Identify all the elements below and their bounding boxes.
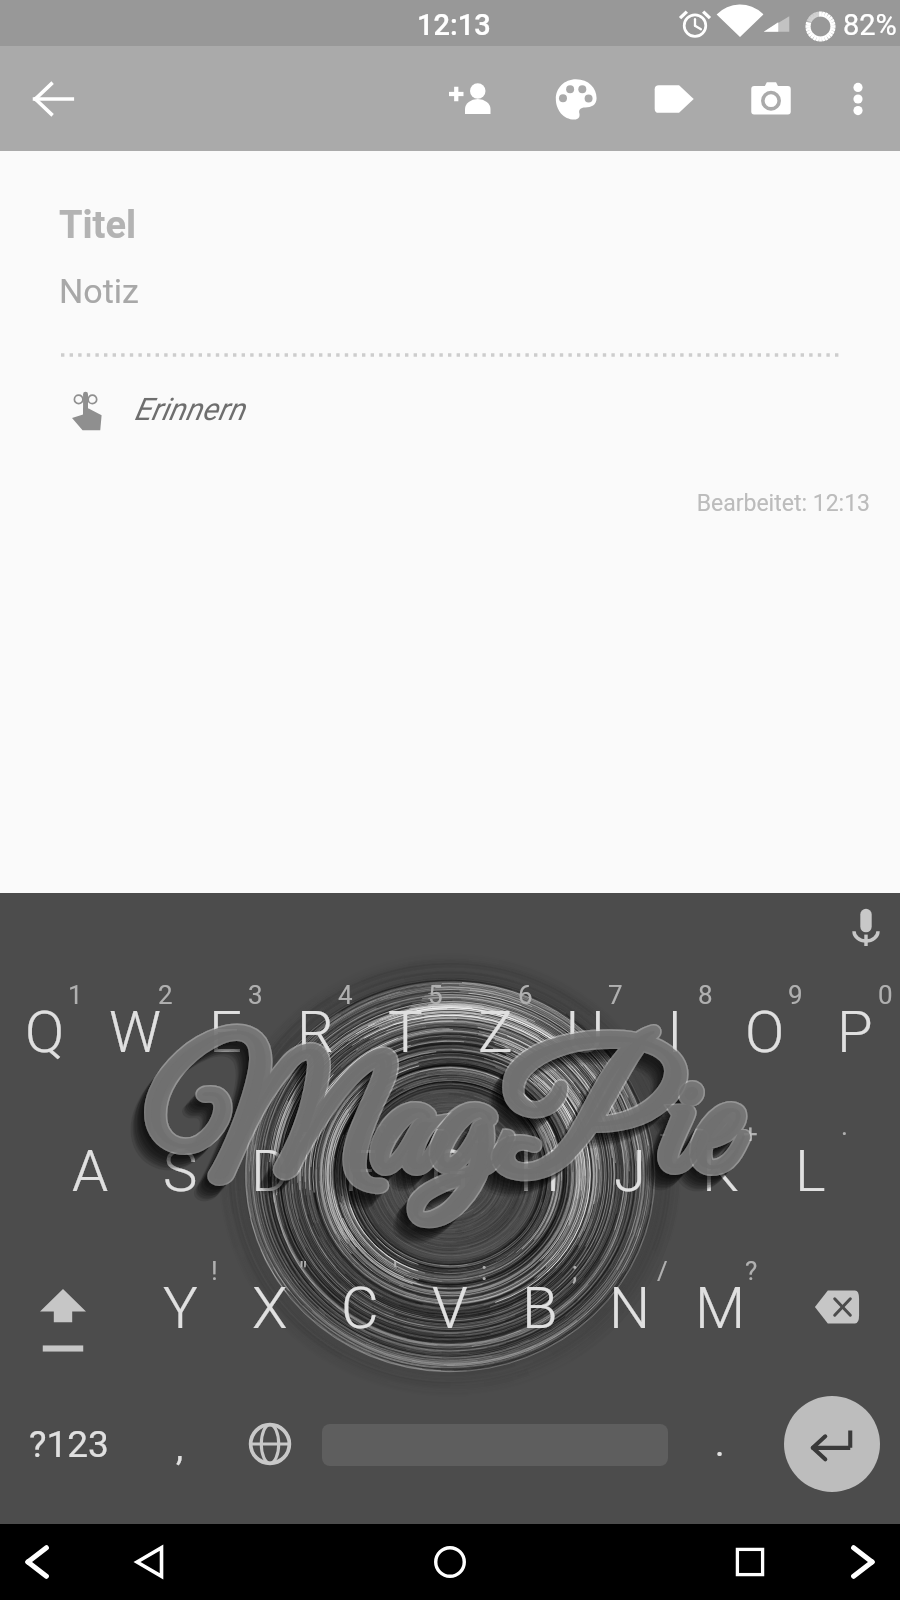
staticText: / (657, 1256, 668, 1286)
button[interactable]: Sprache wechseln (240, 1414, 300, 1474)
button[interactable]: F (315, 1110, 405, 1230)
staticText: ? (745, 1256, 758, 1286)
staticText: MagPie (148, 1026, 734, 1235)
button[interactable]: Spracheingabe (836, 893, 896, 961)
button[interactable]: Zurück (9, 46, 97, 151)
staticText: 5 (428, 980, 443, 1010)
button[interactable]: I (630, 971, 720, 1091)
staticText: N (609, 1274, 651, 1342)
staticText: E (209, 998, 242, 1066)
staticText: MagPie (145, 1029, 731, 1238)
staticText: 9 (788, 980, 803, 1010)
staticText: . (715, 1423, 725, 1465)
button[interactable]: U (540, 971, 630, 1091)
staticText: : (481, 1256, 488, 1286)
staticText: R (297, 998, 334, 1066)
button[interactable]: B (495, 1247, 585, 1367)
staticText: U (566, 998, 605, 1066)
button[interactable]: ?123 (14, 1408, 124, 1480)
staticText: MagPie (140, 1035, 726, 1244)
staticText: D (251, 1137, 290, 1205)
staticText: MagPie (148, 1026, 734, 1235)
button[interactable]: M (675, 1247, 765, 1367)
staticText: MagPie (137, 1038, 723, 1247)
button[interactable]: H (495, 1110, 585, 1230)
staticText: Y (163, 1274, 198, 1342)
staticText: I (667, 998, 683, 1066)
button[interactable]: V (405, 1247, 495, 1367)
button[interactable]: R (270, 971, 360, 1091)
button[interactable]: Mehr Optionen (814, 46, 900, 151)
staticText: 12:13 (417, 8, 491, 42)
button[interactable]: Zurück (6, 1530, 70, 1594)
button[interactable]: A (45, 1110, 135, 1230)
staticText: K (702, 1137, 739, 1205)
staticText: % (378, 1119, 398, 1149)
button[interactable]: Erinnern (71, 390, 245, 432)
staticText: V (432, 1274, 468, 1342)
staticText: Notiz (59, 271, 139, 311)
staticText: 0 (878, 980, 893, 1010)
button[interactable]: E (180, 971, 270, 1091)
staticText: H (519, 1137, 561, 1205)
button[interactable]: C (315, 1247, 405, 1367)
staticText: P (837, 998, 873, 1066)
button[interactable]: W (90, 971, 180, 1091)
button[interactable]: Eingabe (784, 1396, 880, 1492)
button[interactable]: Label (630, 46, 718, 151)
staticText: + (743, 1119, 758, 1149)
button[interactable]: K (675, 1110, 765, 1230)
staticText: 82% (843, 8, 897, 42)
button[interactable]: J (585, 1110, 675, 1230)
button[interactable]: Löschen (792, 1255, 882, 1359)
button[interactable]: Zurück (118, 1530, 182, 1594)
staticText: F (344, 1137, 377, 1205)
staticText: ; (572, 1256, 578, 1286)
staticText: · (841, 1119, 848, 1149)
button[interactable]: Kamera (727, 46, 815, 151)
staticText: 7 (608, 980, 623, 1010)
staticText: MagPie (147, 1028, 733, 1237)
staticText: MagPie (148, 1026, 734, 1235)
button[interactable]: Mitarbeiter hinzufügen (428, 46, 516, 151)
staticText: C (341, 1274, 379, 1342)
button[interactable]: , (140, 1408, 220, 1488)
staticText: - (660, 1119, 668, 1149)
button[interactable]: X (225, 1247, 315, 1367)
staticText: A (72, 1137, 109, 1205)
button[interactable]: N (585, 1247, 675, 1367)
staticText: 2 (158, 980, 173, 1010)
button[interactable]: Umschalt (18, 1271, 108, 1375)
button[interactable]: S (135, 1110, 225, 1230)
staticText: € (293, 1119, 308, 1149)
staticText: * (566, 1119, 578, 1149)
staticText: Bearbeitet: 12:13 (0, 490, 870, 517)
button[interactable]: Übersicht (718, 1530, 782, 1594)
staticText: ?123 (29, 1423, 109, 1466)
staticText: O (745, 998, 785, 1066)
button[interactable]: G (405, 1110, 495, 1230)
staticText: J (614, 1137, 646, 1205)
staticText: ' (393, 1256, 398, 1286)
button[interactable]: T (360, 971, 450, 1091)
button[interactable]: Z (450, 971, 540, 1091)
button[interactable]: Farbe (532, 46, 620, 151)
button[interactable]: O (720, 971, 810, 1091)
button[interactable]: Startbildschirm (418, 1530, 482, 1594)
staticText: MagPie (139, 1037, 725, 1246)
button[interactable]: Q (0, 971, 90, 1091)
button[interactable]: . (685, 1409, 755, 1479)
staticText: " (299, 1256, 308, 1286)
button[interactable]: P (810, 971, 900, 1091)
staticText: MagPie (133, 1043, 719, 1252)
staticText: 8 (698, 980, 713, 1010)
staticText: B (522, 1274, 558, 1342)
button[interactable]: L (765, 1110, 855, 1230)
button[interactable]: Y (135, 1247, 225, 1367)
button[interactable]: D (225, 1110, 315, 1230)
staticText: M (695, 1274, 746, 1342)
button[interactable]: Weiter (830, 1530, 894, 1594)
staticText: & (471, 1119, 488, 1149)
staticText: MagPie (135, 1041, 721, 1250)
